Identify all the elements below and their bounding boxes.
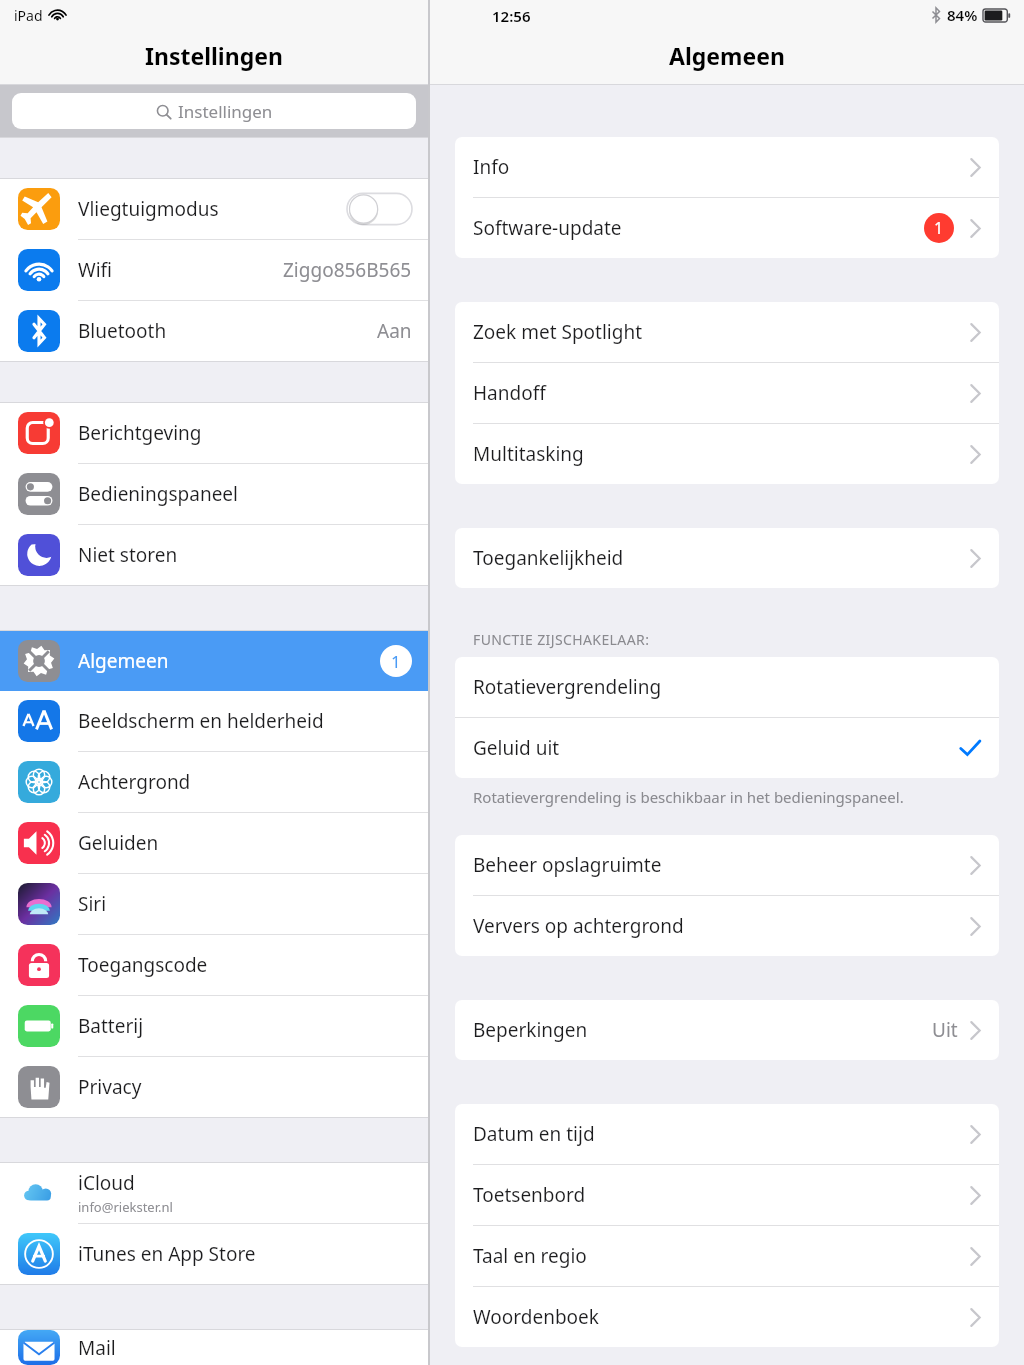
staticText: Toetsenbord	[473, 1182, 586, 1208]
staticText: Privacy	[78, 1074, 142, 1100]
staticText: Beperkingen	[473, 1017, 588, 1043]
button[interactable]: Zoek met Spotlight	[455, 302, 999, 362]
staticText: Instellingen	[145, 40, 283, 71]
button[interactable]: Beeldscherm en helderheid	[0, 691, 428, 751]
button[interactable]: Wifi	[0, 240, 428, 300]
staticText: Beeldscherm en helderheid	[78, 708, 324, 734]
button[interactable]: Mail	[0, 1330, 428, 1365]
button[interactable]: Algemeen	[0, 631, 428, 691]
staticText: Ververs op achtergrond	[473, 913, 684, 939]
staticText: Uit	[932, 1017, 958, 1043]
staticText: Beheer opslagruimte	[473, 852, 662, 878]
staticText: info@riekster.nl	[78, 1198, 173, 1216]
staticText: Handoff	[473, 380, 546, 406]
button[interactable]: Vliegtuigmodus uit	[347, 190, 412, 228]
staticText: Geluid uit	[473, 735, 560, 761]
button[interactable]: Toegankelijkheid	[455, 528, 999, 588]
button[interactable]: Geluiden	[0, 813, 428, 873]
staticText: Ziggo856B565	[283, 257, 412, 283]
button[interactable]: Siri	[0, 874, 428, 934]
button[interactable]: Info	[455, 137, 999, 197]
staticText: 84%	[947, 5, 978, 25]
staticText: Aan	[377, 318, 412, 344]
staticText: Geluiden	[78, 830, 159, 856]
staticText: Toegankelijkheid	[473, 545, 624, 571]
staticText: Multitasking	[473, 441, 584, 467]
staticText: FUNCTIE ZIJSCHAKELAAR:	[473, 630, 650, 649]
button[interactable]: Handoff	[455, 363, 999, 423]
staticText: Bluetooth	[78, 318, 167, 344]
staticText: Bedieningspaneel	[78, 481, 238, 507]
staticText: iCloud	[78, 1170, 135, 1196]
staticText: Taal en regio	[473, 1243, 587, 1269]
button[interactable]: Toetsenbord	[455, 1165, 999, 1225]
staticText: 1	[934, 217, 944, 239]
button[interactable]: Woordenboek	[455, 1287, 999, 1347]
staticText: Algemeen	[78, 648, 169, 674]
button[interactable]: Software-update	[455, 198, 999, 258]
staticText: iTunes en App Store	[78, 1241, 256, 1267]
button[interactable]: Ververs op achtergrond	[455, 896, 999, 956]
staticText: Niet storen	[78, 542, 178, 568]
button[interactable]: Geluid uit	[455, 718, 999, 778]
staticText: Siri	[78, 891, 107, 917]
staticText: Info	[473, 154, 510, 180]
button[interactable]: iTunes en App Store	[0, 1224, 428, 1284]
staticText: Berichtgeving	[78, 420, 202, 446]
button[interactable]: Berichtgeving	[0, 403, 428, 463]
button[interactable]: Rotatievergrendeling	[455, 657, 999, 717]
button[interactable]: Niet storen	[0, 525, 428, 585]
staticText: Datum en tijd	[473, 1121, 595, 1147]
staticText: Vliegtuigmodus	[78, 196, 219, 222]
button[interactable]: Toegangscode	[0, 935, 428, 995]
button[interactable]: iCloud	[0, 1163, 428, 1223]
staticText: Woordenboek	[473, 1304, 599, 1330]
staticText: Software-update	[473, 215, 622, 241]
button[interactable]: Instellingen	[12, 93, 416, 129]
staticText: Algemeen	[669, 40, 785, 71]
staticText: Rotatievergrendeling is beschikbaar in h…	[473, 787, 904, 807]
staticText: 12:56	[492, 6, 531, 26]
button[interactable]: Taal en regio	[455, 1226, 999, 1286]
button[interactable]: Beperkingen	[455, 1000, 999, 1060]
button[interactable]: Bedieningspaneel	[0, 464, 428, 524]
button[interactable]: Achtergrond	[0, 752, 428, 812]
button[interactable]: Beheer opslagruimte	[455, 835, 999, 895]
staticText: Rotatievergrendeling	[473, 674, 662, 700]
staticText: Batterij	[78, 1013, 144, 1039]
staticText: Instellingen	[178, 100, 273, 123]
staticText: Mail	[78, 1335, 116, 1361]
button[interactable]: Privacy	[0, 1057, 428, 1117]
button[interactable]: Bluetooth	[0, 301, 428, 361]
staticText: iPad	[14, 6, 43, 25]
staticText: Achtergrond	[78, 769, 191, 795]
staticText: Toegangscode	[78, 952, 208, 978]
staticText: Zoek met Spotlight	[473, 319, 643, 345]
button[interactable]: Vliegtuigmodus	[0, 179, 428, 239]
button[interactable]: Batterij	[0, 996, 428, 1056]
button[interactable]: Datum en tijd	[455, 1104, 999, 1164]
button[interactable]: Multitasking	[455, 424, 999, 484]
staticText: 1	[391, 650, 401, 673]
staticText: Wifi	[78, 257, 113, 283]
